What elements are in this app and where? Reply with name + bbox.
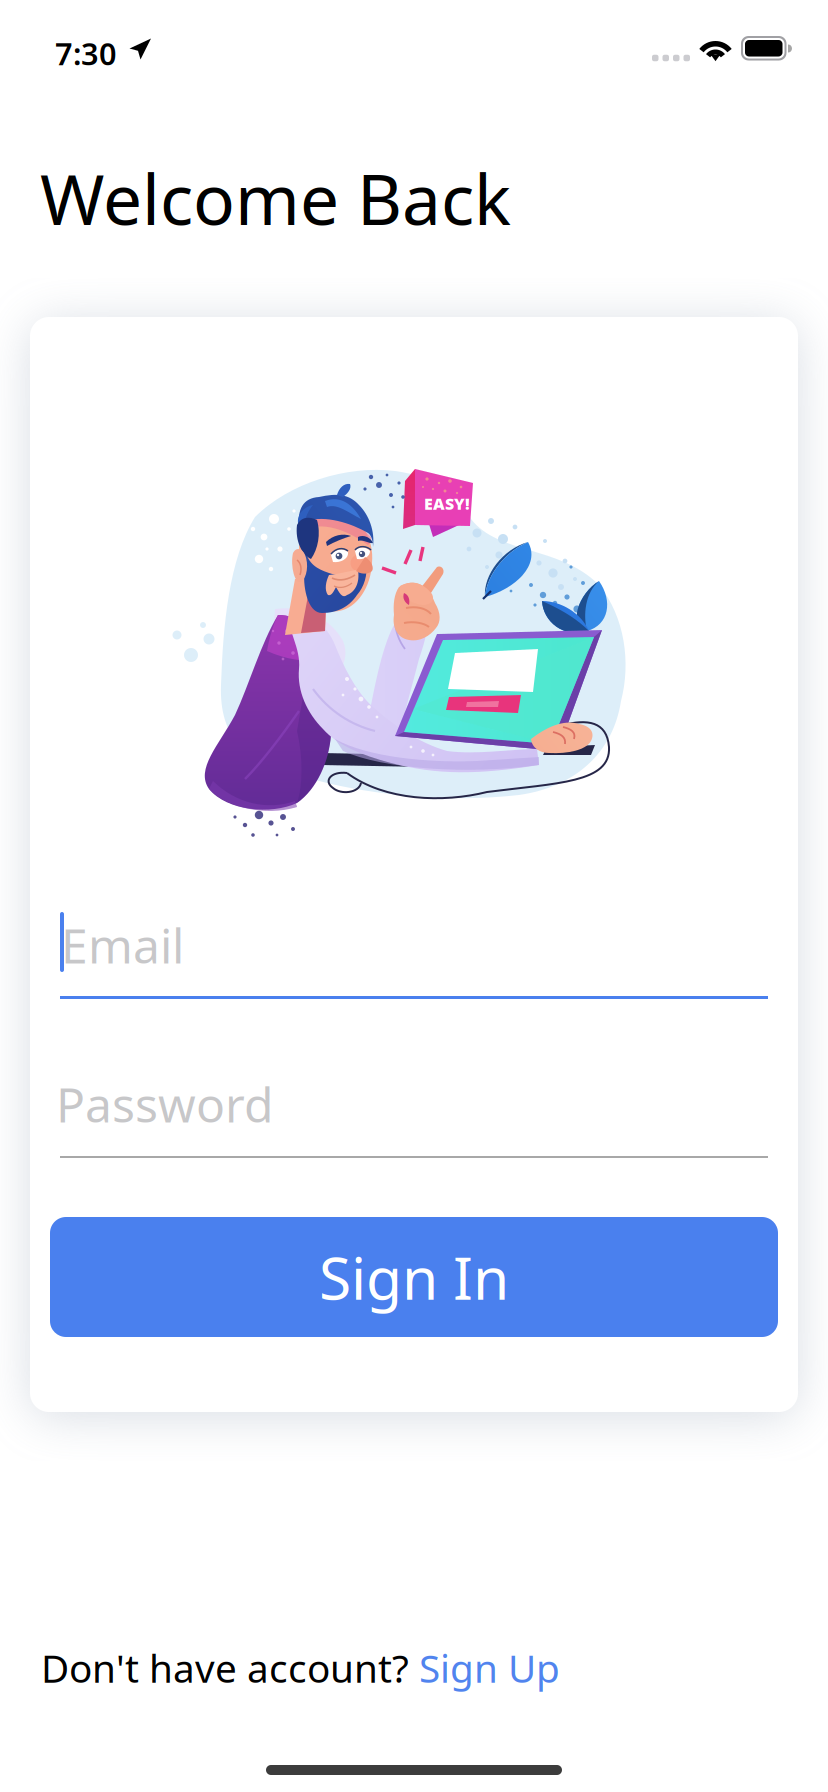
button[interactable]: Sign Up (419, 1642, 560, 1693)
staticText: Don't have account? (41, 1642, 419, 1693)
staticText: 7:30 (55, 33, 117, 74)
staticText: Sign Up (419, 1642, 560, 1693)
staticText: Password (56, 1072, 274, 1136)
staticText: EASY! (424, 493, 470, 514)
staticText: Welcome Back (40, 152, 511, 244)
button[interactable]: Email (60, 912, 768, 1002)
button[interactable]: Password (60, 1071, 768, 1161)
staticText: Email (61, 913, 184, 977)
staticText: Sign In (319, 1238, 509, 1316)
button[interactable]: Sign In (50, 1217, 778, 1337)
